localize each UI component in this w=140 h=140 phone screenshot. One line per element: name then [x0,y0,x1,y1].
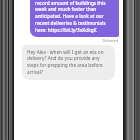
other: Device frame right edge [123,0,140,140]
button[interactable]: record amount of buildings this week and… [30,0,119,37]
staticText: Delivered [102,38,118,43]
staticText: Hey Alex - when will I get an eta on del… [27,49,110,76]
staticText: record amount of buildings this week and… [35,0,114,34]
other: Device frame left edge [0,0,14,140]
button[interactable]: Hey Alex - when will I get an eta on del… [22,45,115,80]
